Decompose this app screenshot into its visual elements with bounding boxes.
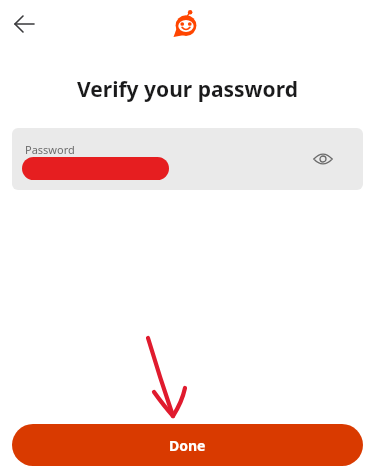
button[interactable]: Back bbox=[4, 6, 40, 42]
staticText: Password bbox=[25, 142, 75, 157]
staticText: Done bbox=[169, 436, 206, 455]
button[interactable]: Done bbox=[12, 424, 363, 466]
button[interactable]: Password bbox=[12, 128, 363, 190]
button[interactable]: Show password bbox=[309, 145, 337, 173]
staticText: Verify your password bbox=[0, 75, 375, 472]
